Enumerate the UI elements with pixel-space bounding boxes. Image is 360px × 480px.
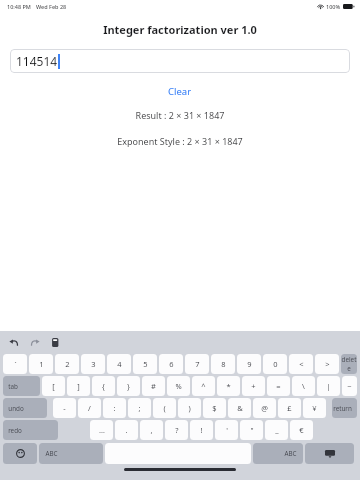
staticText: 5 [143, 359, 148, 369]
staticText: $ [212, 403, 217, 413]
staticText: Wed Feb 28 [36, 3, 67, 10]
button[interactable]: 114514 [10, 49, 350, 73]
button[interactable]: | [317, 376, 340, 396]
staticText: > [325, 359, 330, 369]
staticText: 10:48 PM [7, 3, 31, 10]
button[interactable]: " [240, 420, 263, 440]
staticText: £ [287, 403, 292, 413]
staticText: - [63, 403, 66, 413]
button[interactable]: ' [215, 420, 238, 440]
button[interactable]: \ [292, 376, 315, 396]
button[interactable]: 5 [133, 354, 157, 374]
button[interactable]: … [90, 420, 113, 440]
button[interactable]: £ [278, 398, 301, 418]
button[interactable]: delete [341, 354, 357, 374]
staticText: [ [52, 381, 55, 391]
button[interactable]: ; [128, 398, 151, 418]
staticText: … [99, 425, 105, 435]
button[interactable]: _ [265, 420, 288, 440]
button[interactable]: ] [67, 376, 90, 396]
button[interactable]: 6 [159, 354, 183, 374]
button[interactable]: Redo [28, 336, 41, 349]
staticText: , [150, 425, 153, 435]
button[interactable]: Undo [7, 336, 20, 349]
staticText: Integer factorization ver 1.0 [0, 22, 360, 37]
staticText: # [151, 381, 156, 391]
staticText: 0 [273, 359, 278, 369]
button[interactable]: + [242, 376, 265, 396]
button[interactable]: Clear [152, 82, 208, 101]
staticText: ' [226, 425, 228, 435]
staticText: } [127, 381, 130, 391]
button[interactable]: * [217, 376, 240, 396]
button[interactable]: { [92, 376, 115, 396]
button[interactable]: ` [3, 354, 27, 374]
button[interactable]: , [140, 420, 163, 440]
staticText: 100% [326, 3, 341, 10]
staticText: ABC [45, 449, 58, 458]
staticText: / [88, 403, 91, 413]
staticText: ! [200, 425, 203, 435]
staticText: ABC [284, 449, 297, 458]
button[interactable]: [ [42, 376, 65, 396]
button[interactable]: tab [3, 376, 40, 396]
button[interactable]: ? [165, 420, 188, 440]
button[interactable]: . [115, 420, 138, 440]
button[interactable]: ¥ [303, 398, 326, 418]
staticText: . [125, 425, 128, 435]
button[interactable]: Hide keyboard [305, 443, 354, 464]
button[interactable]: } [117, 376, 140, 396]
other: Wi-Fi [317, 3, 324, 10]
button[interactable]: return [332, 398, 357, 418]
other: Battery [343, 4, 354, 9]
button[interactable]: Paste [49, 336, 62, 349]
button[interactable]: 0 [263, 354, 287, 374]
button[interactable]: € [290, 420, 313, 440]
staticText: undo [8, 404, 24, 413]
button[interactable]: ~ [342, 376, 357, 396]
button[interactable]: 8 [211, 354, 235, 374]
button[interactable]: : [103, 398, 126, 418]
staticText: 6 [169, 359, 174, 369]
button[interactable]: ) [178, 398, 201, 418]
button[interactable]: Emoji [3, 443, 37, 464]
button[interactable]: - [53, 398, 76, 418]
staticText: redo [8, 426, 22, 435]
button[interactable]: 1 [29, 354, 53, 374]
staticText: \ [302, 381, 305, 391]
staticText: ] [77, 381, 80, 391]
staticText: 2 [65, 359, 70, 369]
button[interactable]: & [228, 398, 251, 418]
button[interactable]: % [167, 376, 190, 396]
staticText: < [299, 359, 304, 369]
button[interactable]: 2 [55, 354, 79, 374]
button[interactable]: ! [190, 420, 213, 440]
staticText: 7 [195, 359, 200, 369]
staticText: ¥ [312, 403, 317, 413]
button[interactable]: ABC [253, 443, 303, 464]
staticText: ? [175, 425, 179, 435]
staticText: = [276, 381, 281, 391]
button[interactable]: $ [203, 398, 226, 418]
button[interactable]: redo [3, 420, 58, 440]
button[interactable]: 4 [107, 354, 131, 374]
button[interactable]: # [142, 376, 165, 396]
staticText: delete [341, 355, 357, 373]
button[interactable]: ABC [39, 443, 103, 464]
staticText: return [333, 404, 352, 413]
button[interactable]: 3 [81, 354, 105, 374]
button[interactable]: 9 [237, 354, 261, 374]
staticText: " [250, 425, 254, 435]
button[interactable]: ( [153, 398, 176, 418]
staticText: + [251, 381, 256, 391]
button[interactable]: undo [3, 398, 47, 418]
staticText: % [175, 381, 182, 391]
button[interactable]: 7 [185, 354, 209, 374]
button[interactable]: ^ [192, 376, 215, 396]
button[interactable]: < [289, 354, 313, 374]
button[interactable]: / [78, 398, 101, 418]
button[interactable]: = [267, 376, 290, 396]
button[interactable]: @ [253, 398, 276, 418]
button[interactable]: > [315, 354, 339, 374]
